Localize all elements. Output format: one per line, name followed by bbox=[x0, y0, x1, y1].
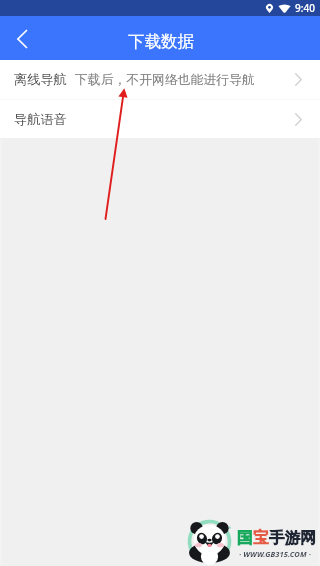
staticText: 导航语音 bbox=[14, 111, 67, 128]
staticText: 下载数据 bbox=[128, 31, 194, 52]
staticText: · WWW.GB315.COM · bbox=[239, 549, 311, 559]
staticText: 手游网 bbox=[269, 528, 316, 548]
button[interactable]: 离线导航 bbox=[0, 60, 320, 99]
staticText: 宝 bbox=[253, 528, 269, 548]
staticText: 离线导航 bbox=[14, 71, 67, 88]
button[interactable]: 导航语音 bbox=[0, 100, 320, 138]
staticText: 下载后，不开网络也能进行导航 bbox=[75, 72, 255, 88]
staticText: 国 bbox=[237, 528, 253, 548]
staticText: 9:40 bbox=[295, 1, 315, 15]
button[interactable]: Back bbox=[0, 16, 44, 60]
